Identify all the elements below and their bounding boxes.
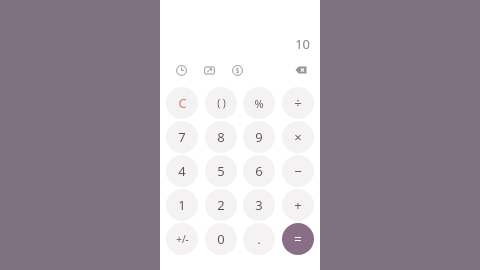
button[interactable]: 2 — [205, 189, 237, 221]
staticText: . — [257, 230, 261, 248]
button[interactable]: 7 — [166, 121, 198, 153]
button[interactable]: − — [282, 155, 314, 187]
staticText: 2 — [217, 196, 225, 214]
staticText: ÷ — [294, 94, 302, 112]
button[interactable]: 3 — [243, 189, 275, 221]
button[interactable]: 1 — [166, 189, 198, 221]
staticText: % — [254, 96, 264, 111]
button[interactable]: + — [282, 189, 314, 221]
button[interactable]: % — [243, 87, 275, 119]
button[interactable]: 9 — [243, 121, 275, 153]
button[interactable]: C — [166, 87, 198, 119]
button[interactable]: ( ) — [205, 87, 237, 119]
staticText: = — [294, 230, 302, 248]
button[interactable]: . — [243, 223, 275, 255]
button[interactable]: Backspace — [292, 61, 310, 79]
staticText: C — [178, 94, 187, 112]
staticText: ( ) — [217, 96, 226, 110]
button[interactable]: 6 — [243, 155, 275, 187]
button[interactable]: +/- — [166, 223, 198, 255]
button[interactable]: 5 — [205, 155, 237, 187]
button[interactable]: 0 — [205, 223, 237, 255]
staticText: 0 — [217, 230, 225, 248]
staticText: 8 — [217, 128, 225, 146]
button[interactable]: Currency — [228, 61, 246, 79]
staticText: 1 — [178, 196, 186, 214]
staticText: 3 — [255, 196, 263, 214]
staticText: + — [294, 196, 302, 214]
staticText: 5 — [217, 162, 225, 180]
button[interactable]: History — [172, 61, 190, 79]
staticText: 9 — [255, 128, 263, 146]
staticText: 6 — [255, 162, 263, 180]
staticText: 4 — [178, 162, 186, 180]
button[interactable]: × — [282, 121, 314, 153]
staticText: +/- — [176, 232, 189, 246]
button[interactable]: 4 — [166, 155, 198, 187]
staticText: − — [294, 162, 302, 180]
button[interactable]: = — [282, 223, 314, 255]
button[interactable]: Unit converter — [200, 61, 218, 79]
staticText: × — [294, 128, 302, 146]
button[interactable]: 8 — [205, 121, 237, 153]
staticText: 7 — [178, 128, 186, 146]
button[interactable]: ÷ — [282, 87, 314, 119]
staticText: $ — [235, 66, 240, 76]
staticText: 10 — [295, 35, 310, 53]
